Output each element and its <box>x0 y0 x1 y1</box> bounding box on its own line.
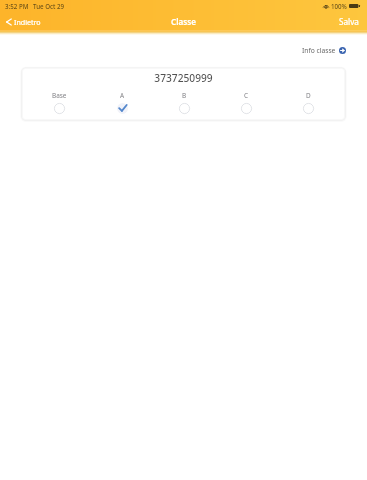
button[interactable]: Salva <box>339 16 359 27</box>
other: Battery <box>349 4 360 8</box>
staticText: B <box>182 91 187 100</box>
staticText: A <box>120 91 125 100</box>
button[interactable]: Base <box>28 91 91 114</box>
staticText: 3:52 PM <box>5 2 29 10</box>
staticText: Tue Oct 29 <box>33 2 65 10</box>
staticText: Base <box>52 91 67 100</box>
button[interactable]: Indietro <box>2 17 41 27</box>
button[interactable]: Info classe <box>301 45 347 56</box>
button[interactable]: B <box>153 91 215 114</box>
staticText: Classe <box>171 16 196 27</box>
staticText: Salva <box>339 16 359 27</box>
staticText: 100% <box>331 2 347 10</box>
staticText: Info classe <box>302 46 336 55</box>
staticText: 3737250999 <box>22 71 345 85</box>
other: Wi-Fi <box>323 3 329 9</box>
button[interactable]: A <box>91 91 153 114</box>
staticText: D <box>306 91 311 100</box>
staticText: Indietro <box>14 17 41 27</box>
button[interactable]: C <box>215 91 277 114</box>
staticText: C <box>244 91 249 100</box>
button[interactable]: D <box>277 91 339 114</box>
